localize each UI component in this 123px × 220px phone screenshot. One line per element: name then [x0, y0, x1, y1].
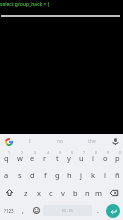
button[interactable]: l [99, 167, 111, 184]
staticText: y [67, 153, 71, 163]
button[interactable]: Emoji [29, 201, 43, 220]
staticText: m [95, 188, 103, 198]
staticText: l [104, 170, 106, 180]
staticText: no [57, 138, 64, 145]
staticText: s [18, 170, 22, 180]
staticText: 6 [71, 150, 74, 155]
staticText: t [56, 153, 59, 163]
staticText: z [24, 188, 28, 198]
staticText: 0 [119, 150, 122, 155]
staticText: r [43, 153, 47, 163]
staticText: w [17, 153, 23, 163]
staticText: a [4, 170, 9, 180]
button[interactable]: a [0, 167, 13, 184]
staticText: select group_hack = ( [0, 1, 50, 8]
staticText: e [30, 153, 35, 163]
button[interactable]: 0 [111, 149, 123, 167]
staticText: ?123 [4, 208, 14, 214]
staticText: f [44, 170, 47, 180]
button[interactable]: z [19, 184, 32, 201]
button[interactable]: 8 [87, 149, 99, 167]
button[interactable]: s [13, 167, 26, 184]
staticText: 2 [21, 150, 24, 155]
staticText: i [92, 153, 94, 163]
staticText: o [103, 153, 108, 163]
button[interactable]: ñ [111, 167, 123, 184]
button[interactable]: 2 [13, 149, 26, 167]
staticText: b [73, 188, 78, 198]
button[interactable]: ?123 [0, 201, 17, 220]
button[interactable]: , [17, 201, 29, 220]
staticText: c [49, 188, 53, 198]
staticText: 9 [107, 150, 110, 155]
staticText: x [37, 188, 41, 198]
button[interactable]: c [45, 184, 57, 201]
staticText: n [85, 188, 90, 198]
staticText: ñ [115, 170, 120, 180]
staticText: the [88, 138, 96, 145]
staticText: I [29, 138, 31, 145]
staticText: v [61, 188, 65, 198]
staticText: p [115, 153, 120, 163]
button[interactable]: m [93, 184, 105, 201]
staticText: d [30, 170, 35, 180]
staticText: 4 [47, 150, 50, 155]
staticText: q [4, 153, 9, 163]
staticText: 3 [34, 150, 37, 155]
button[interactable]: 1 [0, 149, 13, 167]
staticText: 7 [83, 150, 86, 155]
staticText: ES - ES [62, 208, 73, 213]
button[interactable]: 3 [26, 149, 39, 167]
button[interactable]: k [87, 167, 99, 184]
staticText: g [55, 170, 60, 180]
button[interactable]: 6 [63, 149, 75, 167]
staticText: . [97, 206, 99, 216]
button[interactable]: j [75, 167, 87, 184]
button[interactable]: Enter [106, 204, 120, 218]
button[interactable]: b [69, 184, 81, 201]
button[interactable]: n [81, 184, 93, 201]
button[interactable]: x [32, 184, 45, 201]
button[interactable]: Google search [0, 134, 14, 149]
staticText: j [80, 170, 82, 180]
button[interactable]: f [39, 167, 51, 184]
button[interactable]: 5 [51, 149, 63, 167]
button[interactable]: 9 [99, 149, 111, 167]
button[interactable]: no [45, 134, 76, 149]
staticText: , [22, 206, 24, 216]
staticText: 1 [8, 150, 11, 155]
button[interactable]: I [14, 134, 45, 149]
button[interactable]: Shift [0, 184, 19, 201]
staticText: 5 [59, 150, 62, 155]
staticText: k [91, 170, 96, 180]
button[interactable]: 4 [39, 149, 51, 167]
button[interactable]: g [51, 167, 63, 184]
button[interactable]: the [76, 134, 107, 149]
button[interactable]: h [63, 167, 75, 184]
staticText: u [79, 153, 84, 163]
button[interactable]: Voice input [107, 134, 123, 149]
button[interactable]: . [92, 201, 103, 220]
button[interactable]: v [57, 184, 69, 201]
button[interactable]: d [26, 167, 39, 184]
staticText: h [67, 170, 72, 180]
button[interactable]: Backspace [105, 184, 123, 201]
staticText: 8 [95, 150, 98, 155]
button[interactable]: Space [43, 205, 92, 216]
button[interactable]: 7 [75, 149, 87, 167]
